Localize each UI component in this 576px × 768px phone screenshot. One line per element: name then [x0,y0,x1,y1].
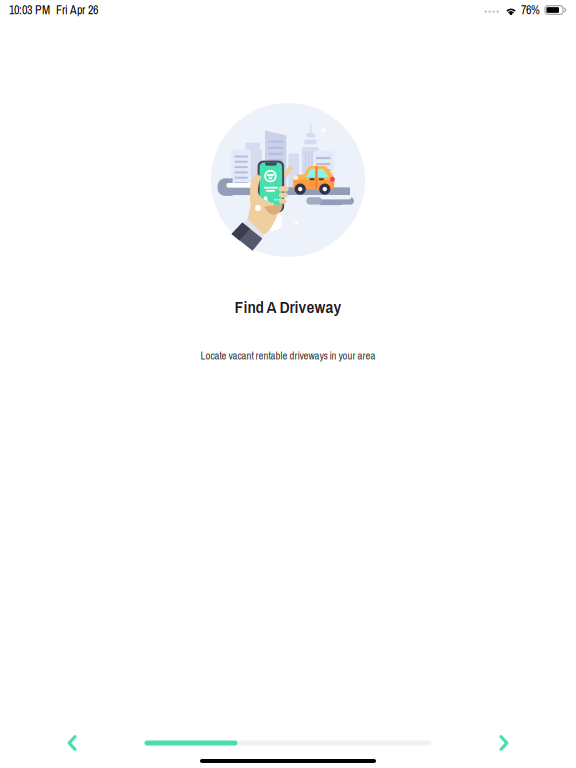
button[interactable]: Next [482,728,526,758]
staticText: Fri Apr 26 [50,2,98,18]
staticText: Locate vacant rentable driveways in your… [200,348,375,363]
staticText: 76% [521,2,540,18]
staticText: 10:03 PM [9,2,50,18]
staticText: Find A Driveway [234,295,341,318]
button[interactable]: Previous [50,728,94,758]
